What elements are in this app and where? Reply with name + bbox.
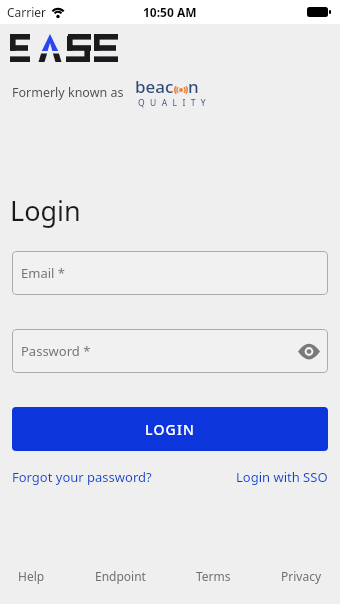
staticText: Email *: [21, 264, 65, 282]
button[interactable]: Password *: [12, 329, 328, 373]
staticText: Login: [10, 192, 81, 229]
staticText: beac: [135, 75, 174, 98]
staticText: Password *: [21, 342, 91, 360]
staticText: Q U A L I T Y: [138, 97, 208, 109]
button[interactable]: Forgot your password?: [12, 468, 152, 486]
button[interactable]: Privacy: [281, 568, 322, 584]
staticText: Carrier: [7, 4, 47, 20]
button[interactable]: LOGIN: [12, 407, 328, 451]
button[interactable]: Terms: [196, 568, 231, 584]
button[interactable]: Endpoint: [95, 568, 146, 584]
staticText: LOGIN: [145, 420, 196, 439]
button[interactable]: Login with SSO: [236, 468, 328, 486]
button[interactable]: Email *: [12, 251, 328, 295]
button[interactable]: Help: [18, 568, 45, 584]
staticText: n: [188, 75, 199, 98]
staticText: Formerly known as: [12, 84, 124, 101]
staticText: 10:50 AM: [143, 4, 197, 20]
